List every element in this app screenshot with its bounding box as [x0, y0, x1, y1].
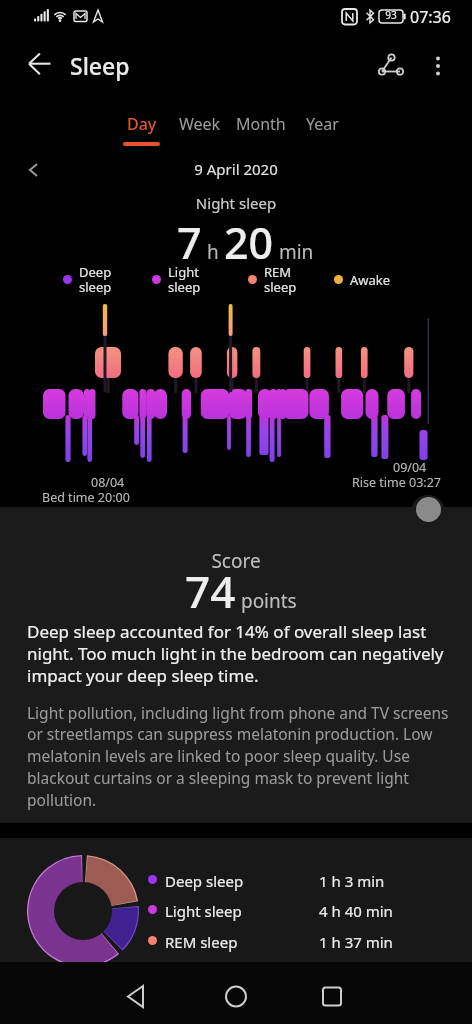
button[interactable]	[372, 50, 408, 84]
staticText: Awake	[350, 271, 391, 289]
staticText: 1 h 3 min	[319, 871, 385, 891]
staticText: 07:36	[410, 6, 451, 28]
staticText: Light pollution, including light from ph…	[27, 702, 449, 811]
staticText: Sleep	[70, 50, 130, 81]
staticText: 74	[185, 561, 236, 621]
staticText: Night sleep	[0, 193, 472, 213]
staticText: Score	[0, 548, 472, 574]
button[interactable]	[20, 48, 54, 80]
staticText: Rise time 03:27	[352, 474, 441, 491]
staticText: Deep sleep	[165, 871, 244, 891]
staticText: REM sleep	[165, 932, 238, 952]
staticText: Light sleep	[168, 263, 201, 296]
staticText: h	[202, 239, 224, 265]
staticText: Light sleep	[165, 901, 242, 921]
staticText: min	[274, 239, 314, 265]
staticText: 1 h 37 min	[319, 932, 393, 952]
button[interactable]	[302, 968, 362, 1022]
button[interactable]: Year	[306, 113, 339, 135]
staticText: Bed time 20:00	[42, 489, 130, 506]
button[interactable]	[424, 50, 452, 84]
staticText: points	[236, 588, 297, 614]
button[interactable]: Week	[179, 113, 221, 135]
staticText: Deep sleep accounted for 14% of overall …	[27, 620, 444, 687]
staticText: 7	[177, 213, 202, 272]
staticText: Deep sleep	[79, 263, 112, 296]
staticText: 4 h 40 min	[319, 901, 393, 921]
staticText: 93	[364, 8, 418, 22]
button[interactable]: Day	[118, 106, 166, 148]
staticText: 08/04	[91, 474, 125, 491]
button[interactable]: Month	[236, 113, 286, 135]
staticText: 9 April 2020	[0, 159, 472, 179]
button[interactable]	[106, 968, 166, 1022]
staticText: REM sleep	[264, 263, 297, 296]
button[interactable]	[416, 497, 441, 522]
staticText: Day	[127, 113, 157, 135]
staticText: 09/04	[393, 459, 427, 476]
button[interactable]	[206, 968, 266, 1022]
staticText: 20	[224, 213, 274, 272]
